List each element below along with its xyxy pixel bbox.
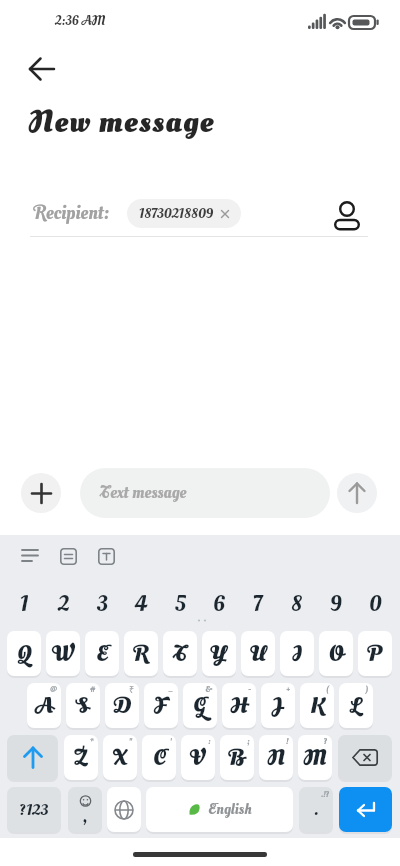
button[interactable]: [20, 50, 64, 88]
staticText: .!?: [321, 788, 330, 800]
button[interactable]: T: [163, 631, 197, 676]
staticText: V: [190, 743, 206, 773]
button[interactable]: 18730218809: [127, 199, 241, 228]
button[interactable]: 9: [319, 583, 353, 625]
button[interactable]: [107, 787, 141, 832]
button[interactable]: 7: [241, 583, 275, 625]
button[interactable]: I: [280, 631, 314, 676]
button[interactable]: P: [358, 631, 392, 676]
button[interactable]: R: [124, 631, 158, 676]
staticText: 8: [291, 589, 303, 619]
staticText: ': [170, 735, 172, 747]
staticText: 2:36 AM: [55, 12, 106, 30]
staticText: H: [230, 691, 248, 721]
button[interactable]: 5: [163, 583, 197, 625]
staticText: 3: [97, 589, 108, 619]
staticText: A: [35, 691, 54, 721]
staticText: @: [50, 683, 57, 695]
button[interactable]: [326, 195, 368, 235]
button[interactable]: F: [144, 683, 178, 728]
staticText: I: [292, 639, 302, 669]
button[interactable]: [339, 787, 392, 832]
button[interactable]: 1: [7, 583, 41, 625]
button[interactable]: N: [259, 735, 293, 780]
button[interactable]: ?123: [7, 787, 61, 832]
staticText: :: [208, 735, 211, 747]
button[interactable]: Text message: [80, 468, 330, 518]
button[interactable]: S: [66, 683, 100, 728]
button[interactable]: L: [339, 683, 373, 728]
button[interactable]: C: [142, 735, 176, 780]
staticText: -: [248, 683, 252, 695]
staticText: T: [173, 639, 188, 669]
staticText: D: [113, 691, 132, 721]
staticText: C: [153, 743, 166, 773]
staticText: S: [76, 691, 90, 721]
staticText: P: [368, 639, 382, 669]
staticText: +: [286, 683, 291, 695]
staticText: R: [134, 639, 149, 669]
staticText: *: [90, 735, 94, 747]
button[interactable]: [12, 540, 48, 572]
button[interactable]: E: [85, 631, 119, 676]
button[interactable]: O: [319, 631, 353, 676]
staticText: New message: [28, 101, 215, 144]
button[interactable]: [50, 540, 86, 572]
staticText: N: [267, 743, 285, 773]
button[interactable]: A: [27, 683, 61, 728]
staticText: 1: [20, 589, 29, 619]
button[interactable]: 4: [124, 583, 158, 625]
staticText: 6: [213, 589, 226, 619]
staticText: 18730218809: [139, 204, 214, 223]
button[interactable]: 3: [85, 583, 119, 625]
staticText: Recipient:: [34, 200, 110, 226]
staticText: 9: [330, 589, 342, 619]
staticText: U: [250, 639, 267, 669]
button[interactable]: [338, 735, 392, 780]
staticText: Z: [75, 743, 88, 773]
staticText: W: [52, 639, 75, 669]
button[interactable]: B: [220, 735, 254, 780]
staticText: (: [326, 683, 330, 695]
button[interactable]: English: [146, 787, 293, 832]
staticText: ₹: [129, 683, 135, 695]
staticText: &: [205, 683, 213, 695]
button[interactable]: Z: [64, 735, 98, 780]
button[interactable]: U: [241, 631, 275, 676]
button[interactable]: 2: [46, 583, 80, 625]
button[interactable]: [21, 473, 61, 513]
staticText: _: [168, 683, 174, 695]
staticText: Text message: [100, 481, 187, 505]
staticText: ,: [83, 805, 87, 829]
button[interactable]: [337, 473, 377, 513]
button[interactable]: 0: [358, 583, 392, 625]
button[interactable]: G: [183, 683, 217, 728]
staticText: M: [303, 743, 327, 773]
button[interactable]: [88, 540, 124, 572]
button[interactable]: V: [181, 735, 215, 780]
staticText: 0: [369, 589, 382, 619]
staticText: G: [193, 691, 207, 721]
staticText: 7: [253, 589, 263, 619]
button[interactable]: H: [222, 683, 256, 728]
staticText: ": [129, 735, 133, 747]
button[interactable]: Q: [7, 631, 41, 676]
staticText: ?123: [20, 799, 49, 821]
button[interactable]: W: [46, 631, 80, 676]
button[interactable]: J: [261, 683, 295, 728]
button[interactable]: X: [103, 735, 137, 780]
button[interactable]: ,: [68, 787, 102, 832]
button[interactable]: K: [300, 683, 334, 728]
staticText: Y: [210, 639, 228, 669]
staticText: 4: [135, 589, 148, 619]
button[interactable]: 8: [280, 583, 314, 625]
button[interactable]: 6: [202, 583, 236, 625]
staticText: Q: [17, 639, 32, 669]
button[interactable]: [7, 735, 58, 780]
button[interactable]: Y: [202, 631, 236, 676]
button[interactable]: D: [105, 683, 139, 728]
button[interactable]: .: [299, 787, 333, 832]
button[interactable]: M: [298, 735, 332, 780]
staticText: #: [90, 683, 96, 695]
staticText: E: [96, 639, 109, 669]
